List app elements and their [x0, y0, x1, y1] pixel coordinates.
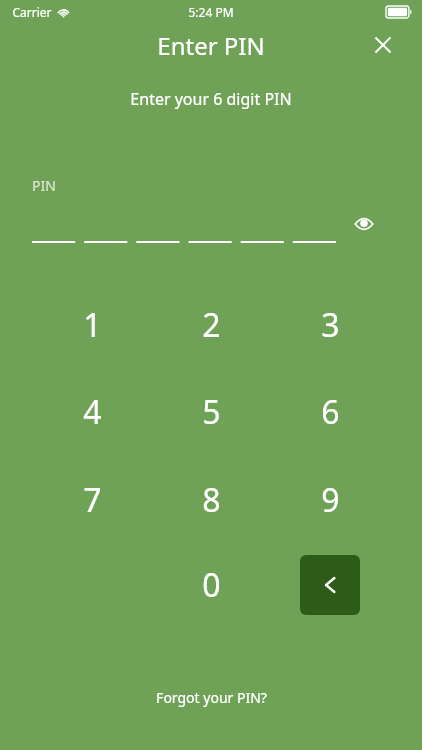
- button[interactable]: 3: [288, 283, 372, 367]
- button[interactable]: 2: [169, 283, 253, 367]
- staticText: Forgot your PIN?: [156, 688, 267, 707]
- staticText: 7: [83, 478, 102, 522]
- staticText: Enter PIN: [157, 29, 265, 62]
- staticText: 1: [83, 303, 102, 347]
- button[interactable]: 6: [288, 370, 372, 454]
- button[interactable]: 8: [169, 458, 253, 542]
- button[interactable]: Show PIN: [346, 206, 382, 242]
- staticText: PIN: [32, 176, 56, 195]
- button[interactable]: 1: [50, 283, 134, 367]
- button[interactable]: 4: [50, 370, 134, 454]
- staticText: 4: [83, 390, 102, 434]
- staticText: 3: [321, 303, 340, 347]
- button[interactable]: Close: [364, 26, 402, 64]
- button[interactable]: 5: [169, 370, 253, 454]
- button[interactable]: 7: [50, 458, 134, 542]
- staticText: 0: [202, 563, 221, 607]
- staticText: Enter your 6 digit PIN: [130, 88, 292, 110]
- staticText: 6: [321, 390, 340, 434]
- staticText: 2: [202, 303, 221, 347]
- staticText: 5: [202, 390, 221, 434]
- button[interactable]: 0: [169, 543, 253, 627]
- button[interactable]: 9: [288, 458, 372, 542]
- staticText: 8: [202, 478, 221, 522]
- staticText: 5:24 PM: [188, 4, 234, 20]
- staticText: Carrier: [12, 4, 52, 20]
- button[interactable]: Forgot your PIN?: [148, 685, 275, 710]
- staticText: 9: [321, 478, 340, 522]
- button[interactable]: Delete: [300, 555, 360, 615]
